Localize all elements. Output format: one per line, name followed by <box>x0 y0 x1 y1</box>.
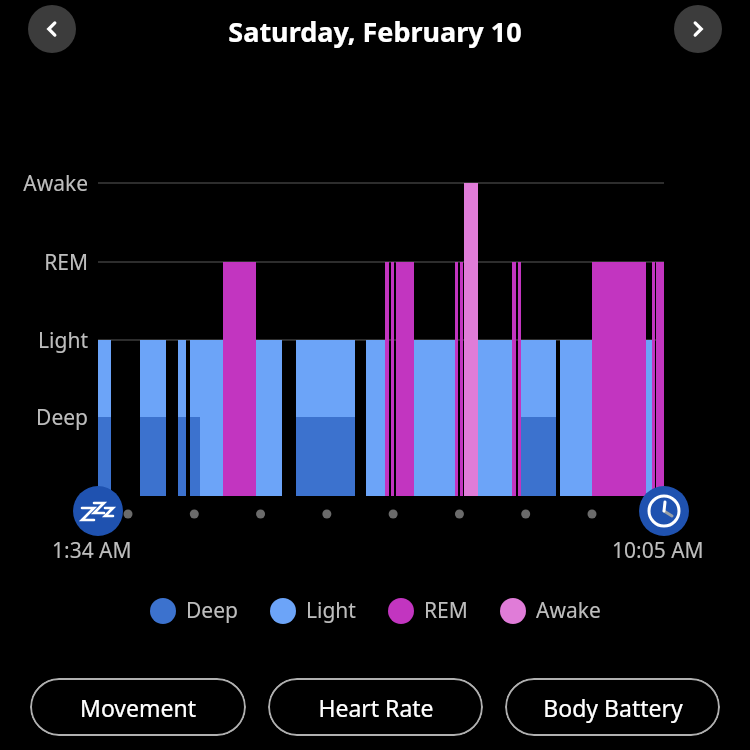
staticText: Deep <box>186 596 238 625</box>
button[interactable]: Previous day <box>28 5 76 53</box>
staticText: REM <box>44 248 88 277</box>
staticText: Light <box>38 326 88 355</box>
button[interactable]: Body Battery <box>505 678 720 736</box>
staticText: REM <box>424 596 468 625</box>
staticText: Light <box>306 596 356 625</box>
staticText: Deep <box>36 403 88 432</box>
staticText: 10:05 AM <box>612 536 704 565</box>
staticText: Saturday, February 10 <box>0 13 750 50</box>
staticText: Awake <box>23 169 88 198</box>
staticText: Movement <box>80 692 196 723</box>
staticText: 1:34 AM <box>52 536 132 565</box>
staticText: Heart Rate <box>318 692 434 723</box>
staticText: Awake <box>536 596 601 625</box>
button[interactable]: Next day <box>674 5 722 53</box>
button[interactable]: Heart Rate <box>268 678 483 736</box>
button[interactable]: Movement <box>30 678 246 736</box>
staticText: Body Battery <box>543 692 683 723</box>
